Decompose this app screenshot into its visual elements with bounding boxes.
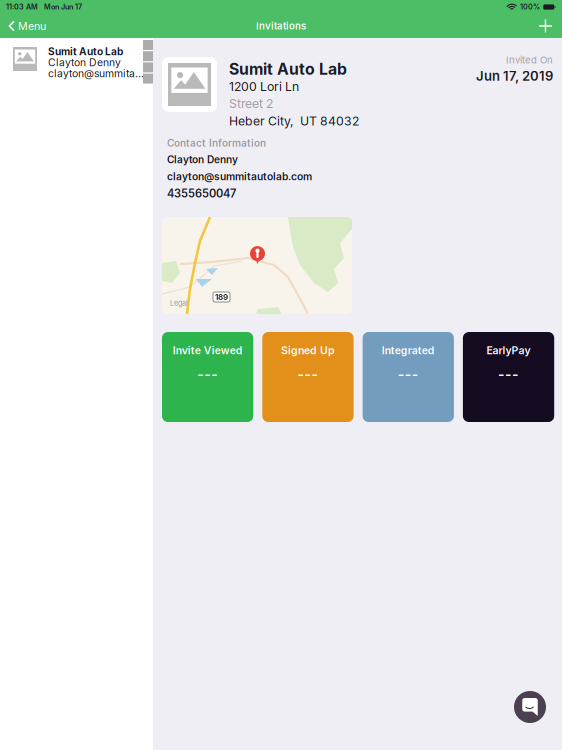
staticText: clayton@summitautolab.com bbox=[48, 67, 144, 80]
staticText: 11:03 AM bbox=[6, 3, 38, 11]
staticText: --- bbox=[498, 366, 519, 383]
button[interactable]: New invitation bbox=[529, 14, 562, 38]
button[interactable]: Integrated bbox=[363, 332, 454, 422]
staticText: Sumit Auto Lab bbox=[48, 45, 123, 58]
staticText: 100% bbox=[520, 3, 540, 11]
staticText: Integrated bbox=[382, 344, 435, 357]
staticText: EarlyPay bbox=[486, 344, 530, 357]
staticText: --- bbox=[398, 366, 419, 383]
staticText: Invited On bbox=[506, 54, 553, 66]
staticText: Street 2 bbox=[229, 96, 273, 111]
button[interactable]: Signed Up bbox=[262, 332, 354, 422]
staticText: clayton@summitautolab.com bbox=[167, 170, 312, 183]
staticText: --- bbox=[297, 366, 318, 383]
staticText: Menu bbox=[18, 19, 46, 32]
staticText: --- bbox=[197, 366, 218, 383]
staticText: Mon Jun 17 bbox=[44, 3, 82, 11]
button[interactable]: EarlyPay bbox=[463, 332, 554, 422]
staticText: 189 bbox=[215, 292, 228, 302]
staticText: Jun 17, 2019 bbox=[476, 68, 553, 84]
staticText: Invitations bbox=[256, 20, 306, 32]
button[interactable]: Menu bbox=[0, 14, 52, 38]
staticText: 1200 Lori Ln bbox=[229, 79, 299, 94]
button[interactable]: Sumit Auto Lab bbox=[0, 38, 153, 86]
staticText: Clayton Denny bbox=[167, 153, 238, 166]
button[interactable]: Open messenger bbox=[508, 685, 552, 729]
staticText: Heber City, UT 84032 bbox=[229, 114, 359, 128]
staticText: Legal bbox=[170, 299, 188, 307]
button[interactable]: Invite Viewed bbox=[162, 332, 253, 422]
staticText: Contact Information bbox=[167, 137, 266, 149]
staticText: Clayton Denny bbox=[48, 56, 121, 69]
staticText: Signed Up bbox=[281, 344, 335, 357]
staticText: 4355650047 bbox=[167, 187, 236, 200]
staticText: Sumit Auto Lab bbox=[229, 59, 347, 78]
staticText: Invite Viewed bbox=[173, 344, 243, 357]
